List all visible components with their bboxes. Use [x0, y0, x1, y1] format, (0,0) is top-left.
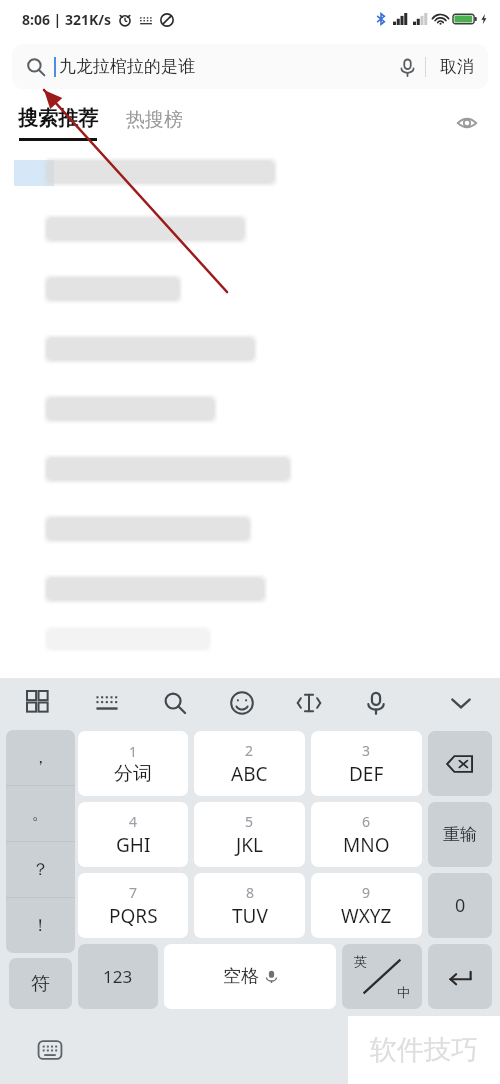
button[interactable]: Keyboard layout	[88, 684, 126, 722]
staticText: 2	[245, 741, 254, 760]
staticText: 热搜榜	[126, 108, 183, 132]
button[interactable]: Voice search	[389, 49, 425, 85]
button[interactable]: 4	[78, 802, 188, 867]
staticText: ABC	[231, 761, 268, 787]
staticText: 5	[245, 812, 254, 831]
button[interactable]: 热搜榜	[126, 108, 183, 132]
button[interactable]: 搜索推荐	[18, 106, 98, 141]
staticText: 4	[129, 812, 138, 831]
button[interactable]: 7	[78, 873, 188, 938]
staticText: 符	[31, 972, 50, 996]
staticText: 九龙拉棺拉的是谁	[59, 56, 195, 77]
staticText: 取消	[440, 56, 474, 77]
staticText: 123	[103, 965, 133, 988]
button[interactable]: ，	[6, 730, 75, 785]
staticText: GHI	[116, 832, 151, 858]
staticText: JKL	[236, 832, 263, 858]
button[interactable]: Switch input method	[30, 1030, 70, 1070]
button[interactable]: 9	[311, 873, 422, 938]
staticText: 软件技巧	[370, 1033, 478, 1067]
button[interactable]: 5	[194, 802, 305, 867]
button[interactable]: Move cursor	[290, 684, 328, 722]
staticText: 中	[397, 984, 410, 1000]
staticText: ？	[32, 859, 49, 880]
staticText: 8	[246, 883, 255, 902]
staticText: 分词	[114, 762, 152, 786]
button[interactable]: 8	[194, 873, 305, 938]
staticText: 重输	[443, 824, 477, 845]
button[interactable]: Toggle visibility	[452, 108, 482, 138]
staticText: 搜索推荐	[18, 106, 98, 131]
staticText: 1	[129, 742, 138, 761]
button[interactable]: Backspace	[428, 731, 492, 796]
button[interactable]: 3	[311, 731, 422, 796]
button[interactable]: 123	[78, 944, 158, 1009]
button[interactable]: Enter	[428, 944, 492, 1009]
button[interactable]: 0	[428, 873, 492, 938]
staticText: WXYZ	[341, 903, 392, 929]
button[interactable]: 2	[194, 731, 305, 796]
staticText: ，	[32, 747, 49, 768]
button[interactable]: Switch English Chinese	[342, 944, 422, 1009]
staticText: MNO	[343, 832, 390, 858]
staticText: 7	[129, 883, 138, 902]
button[interactable]: ！	[6, 898, 75, 953]
staticText: DEF	[349, 761, 384, 787]
staticText: TUV	[232, 903, 268, 929]
button[interactable]: 。	[6, 786, 75, 841]
staticText: PQRS	[109, 903, 158, 929]
staticText: 6	[362, 812, 371, 831]
staticText: 空格	[223, 965, 259, 988]
staticText: 9	[362, 883, 371, 902]
button[interactable]: 空格	[164, 944, 336, 1009]
button[interactable]: 取消	[440, 44, 474, 89]
button[interactable]: Search	[156, 684, 194, 722]
button[interactable]: 重输	[428, 802, 492, 867]
staticText: 8:06 | 321K/s	[22, 10, 112, 29]
staticText: 英	[354, 953, 367, 969]
button[interactable]: ？	[6, 842, 75, 897]
button[interactable]: Panels	[20, 684, 58, 722]
button[interactable]: Emoji	[223, 684, 261, 722]
button[interactable]: 符	[9, 958, 72, 1009]
staticText: 0	[455, 893, 466, 918]
button[interactable]: Voice input	[357, 684, 395, 722]
button[interactable]: Hide keyboard	[442, 684, 480, 722]
staticText: 3	[362, 741, 371, 760]
staticText: ！	[32, 915, 49, 936]
staticText: 。	[32, 803, 49, 824]
button[interactable]: 九龙拉棺拉的是谁	[12, 44, 488, 89]
button[interactable]: 6	[311, 802, 422, 867]
button[interactable]: 1	[78, 731, 188, 796]
